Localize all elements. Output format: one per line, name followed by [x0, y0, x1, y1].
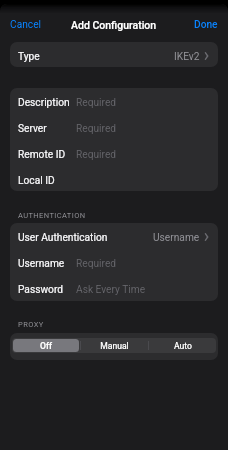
staticText: Auto: [174, 341, 192, 351]
staticText: IKEv2: [174, 51, 200, 63]
button[interactable]: Username: [10, 249, 218, 275]
button[interactable]: Done: [184, 13, 228, 37]
staticText: Off: [40, 341, 52, 351]
button[interactable]: User Authentication: [10, 223, 218, 249]
button[interactable]: Password: [10, 275, 218, 301]
staticText: Local ID: [18, 175, 55, 187]
staticText: Username: [18, 258, 65, 270]
staticText: Manual: [100, 341, 129, 351]
button[interactable]: Type: [10, 42, 218, 67]
staticText: Required: [76, 97, 117, 109]
button[interactable]: Remote ID: [10, 140, 218, 166]
staticText: AUTHENTICATION: [18, 211, 86, 220]
staticText: Required: [76, 258, 117, 270]
button[interactable]: Auto: [150, 339, 215, 352]
button[interactable]: Off: [13, 339, 79, 352]
staticText: Cancel: [10, 19, 42, 31]
staticText: Done: [194, 19, 218, 31]
button[interactable]: Description: [10, 88, 218, 114]
button[interactable]: Cancel: [0, 13, 52, 37]
button[interactable]: Server: [10, 114, 218, 140]
button[interactable]: Manual: [82, 339, 147, 352]
staticText: Add Configuration: [71, 19, 157, 31]
staticText: Password: [18, 284, 63, 296]
staticText: Ask Every Time: [76, 284, 146, 296]
staticText: Server: [18, 123, 47, 135]
button[interactable]: Local ID: [10, 166, 218, 191]
staticText: Remote ID: [18, 149, 66, 161]
staticText: Username: [153, 232, 200, 244]
staticText: User Authentication: [18, 232, 108, 244]
staticText: Required: [76, 123, 117, 135]
staticText: Type: [18, 51, 40, 63]
staticText: Required: [76, 149, 117, 161]
staticText: PROXY: [18, 320, 44, 329]
staticText: Description: [18, 97, 70, 109]
